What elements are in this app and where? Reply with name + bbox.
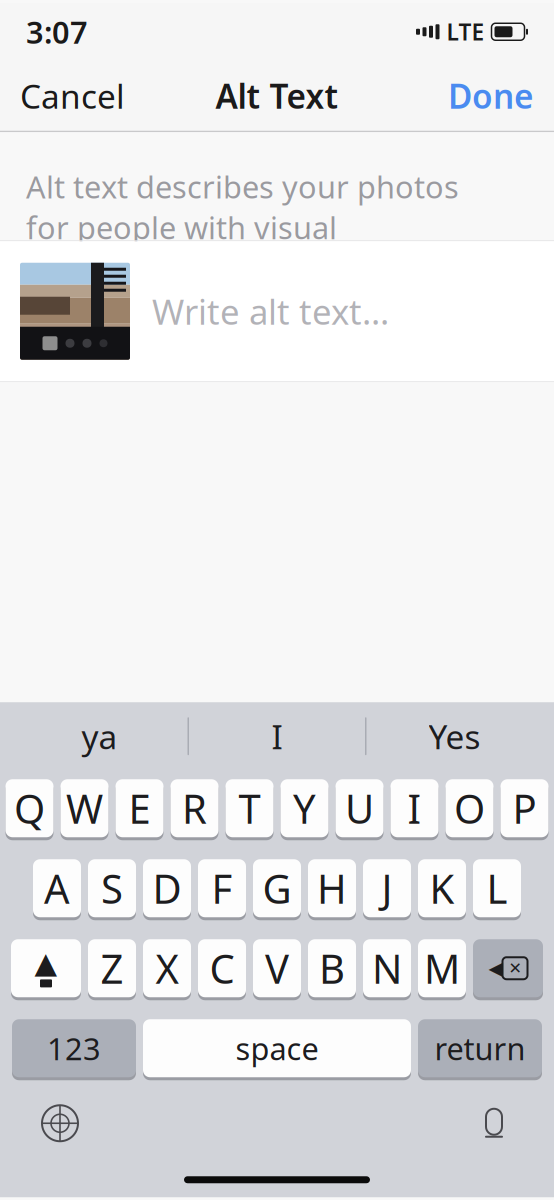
button[interactable]: M: [418, 939, 466, 1000]
staticText: Y: [293, 782, 316, 835]
staticText: Cancel: [20, 74, 125, 118]
button[interactable]: D: [143, 859, 191, 920]
button[interactable]: U: [335, 779, 383, 840]
staticText: Alt Text: [215, 74, 338, 118]
button[interactable]: V: [253, 939, 301, 1000]
staticText: Z: [100, 942, 123, 995]
button[interactable]: Z: [88, 939, 136, 1000]
button[interactable]: W: [60, 779, 108, 840]
button[interactable]: Yes: [366, 702, 542, 770]
button[interactable]: B: [308, 939, 356, 1000]
staticText: N: [372, 942, 402, 995]
staticText: L: [486, 862, 507, 915]
staticText: V: [265, 942, 289, 995]
staticText: ya: [81, 714, 117, 758]
button[interactable]: 123: [12, 1019, 136, 1080]
staticText: M: [424, 942, 460, 995]
staticText: D: [152, 862, 181, 915]
button[interactable]: O: [445, 779, 493, 840]
staticText: Write alt text...: [152, 288, 389, 334]
staticText: H: [317, 862, 347, 915]
staticText: 3:07: [26, 11, 88, 52]
button[interactable]: Y: [280, 779, 328, 840]
staticText: K: [429, 862, 454, 915]
button[interactable]: G: [253, 859, 301, 920]
button[interactable]: L: [473, 859, 521, 920]
staticText: P: [512, 782, 536, 835]
staticText: Yes: [428, 714, 480, 758]
staticText: 123: [47, 1028, 101, 1069]
staticText: ◀: [488, 958, 502, 979]
button[interactable]: K: [418, 859, 466, 920]
staticText: E: [128, 782, 150, 835]
button[interactable]: C: [198, 939, 246, 1000]
button[interactable]: S: [88, 859, 136, 920]
staticText: R: [182, 782, 207, 835]
button[interactable]: Q: [5, 779, 53, 840]
staticText: Alt text describes your photos for peopl…: [26, 166, 459, 288]
staticText: X: [155, 942, 178, 995]
staticText: ✕: [508, 959, 521, 977]
staticText: W: [66, 782, 103, 835]
staticText: Q: [14, 782, 45, 835]
staticText: U: [345, 782, 374, 835]
button[interactable]: return: [418, 1019, 542, 1080]
staticText: LTE: [446, 17, 484, 47]
button[interactable]: I: [189, 702, 365, 770]
staticText: ▲: [34, 946, 57, 979]
button[interactable]: E: [115, 779, 163, 840]
staticText: A: [44, 862, 70, 915]
staticText: space: [235, 1028, 318, 1069]
button[interactable]: T: [225, 779, 273, 840]
button[interactable]: P: [500, 779, 548, 840]
staticText: B: [319, 942, 345, 995]
staticText: F: [211, 862, 232, 915]
button[interactable]: I: [390, 779, 438, 840]
button[interactable]: Write alt text...: [0, 241, 554, 381]
button[interactable]: J: [363, 859, 411, 920]
button[interactable]: Cancel: [0, 62, 145, 130]
staticText: I: [271, 714, 282, 758]
staticText: return: [434, 1028, 525, 1069]
button[interactable]: N: [363, 939, 411, 1000]
button[interactable]: Done: [428, 62, 554, 130]
staticText: Done: [448, 74, 534, 118]
button[interactable]: Next keyboard: [28, 1092, 92, 1154]
staticText: S: [101, 862, 123, 915]
staticText: J: [381, 862, 392, 915]
staticText: C: [209, 942, 234, 995]
button[interactable]: space: [143, 1019, 411, 1080]
button[interactable]: Dictation: [462, 1092, 526, 1154]
button[interactable]: X: [143, 939, 191, 1000]
button[interactable]: R: [170, 779, 218, 840]
button[interactable]: A: [33, 859, 81, 920]
button[interactable]: Shift: [11, 939, 81, 1000]
staticText: I: [407, 782, 421, 835]
button[interactable]: H: [308, 859, 356, 920]
staticText: O: [454, 782, 485, 835]
staticText: T: [238, 782, 260, 835]
staticText: G: [262, 862, 291, 915]
button[interactable]: F: [198, 859, 246, 920]
button[interactable]: Delete: [473, 939, 543, 1000]
button[interactable]: ya: [11, 702, 187, 770]
